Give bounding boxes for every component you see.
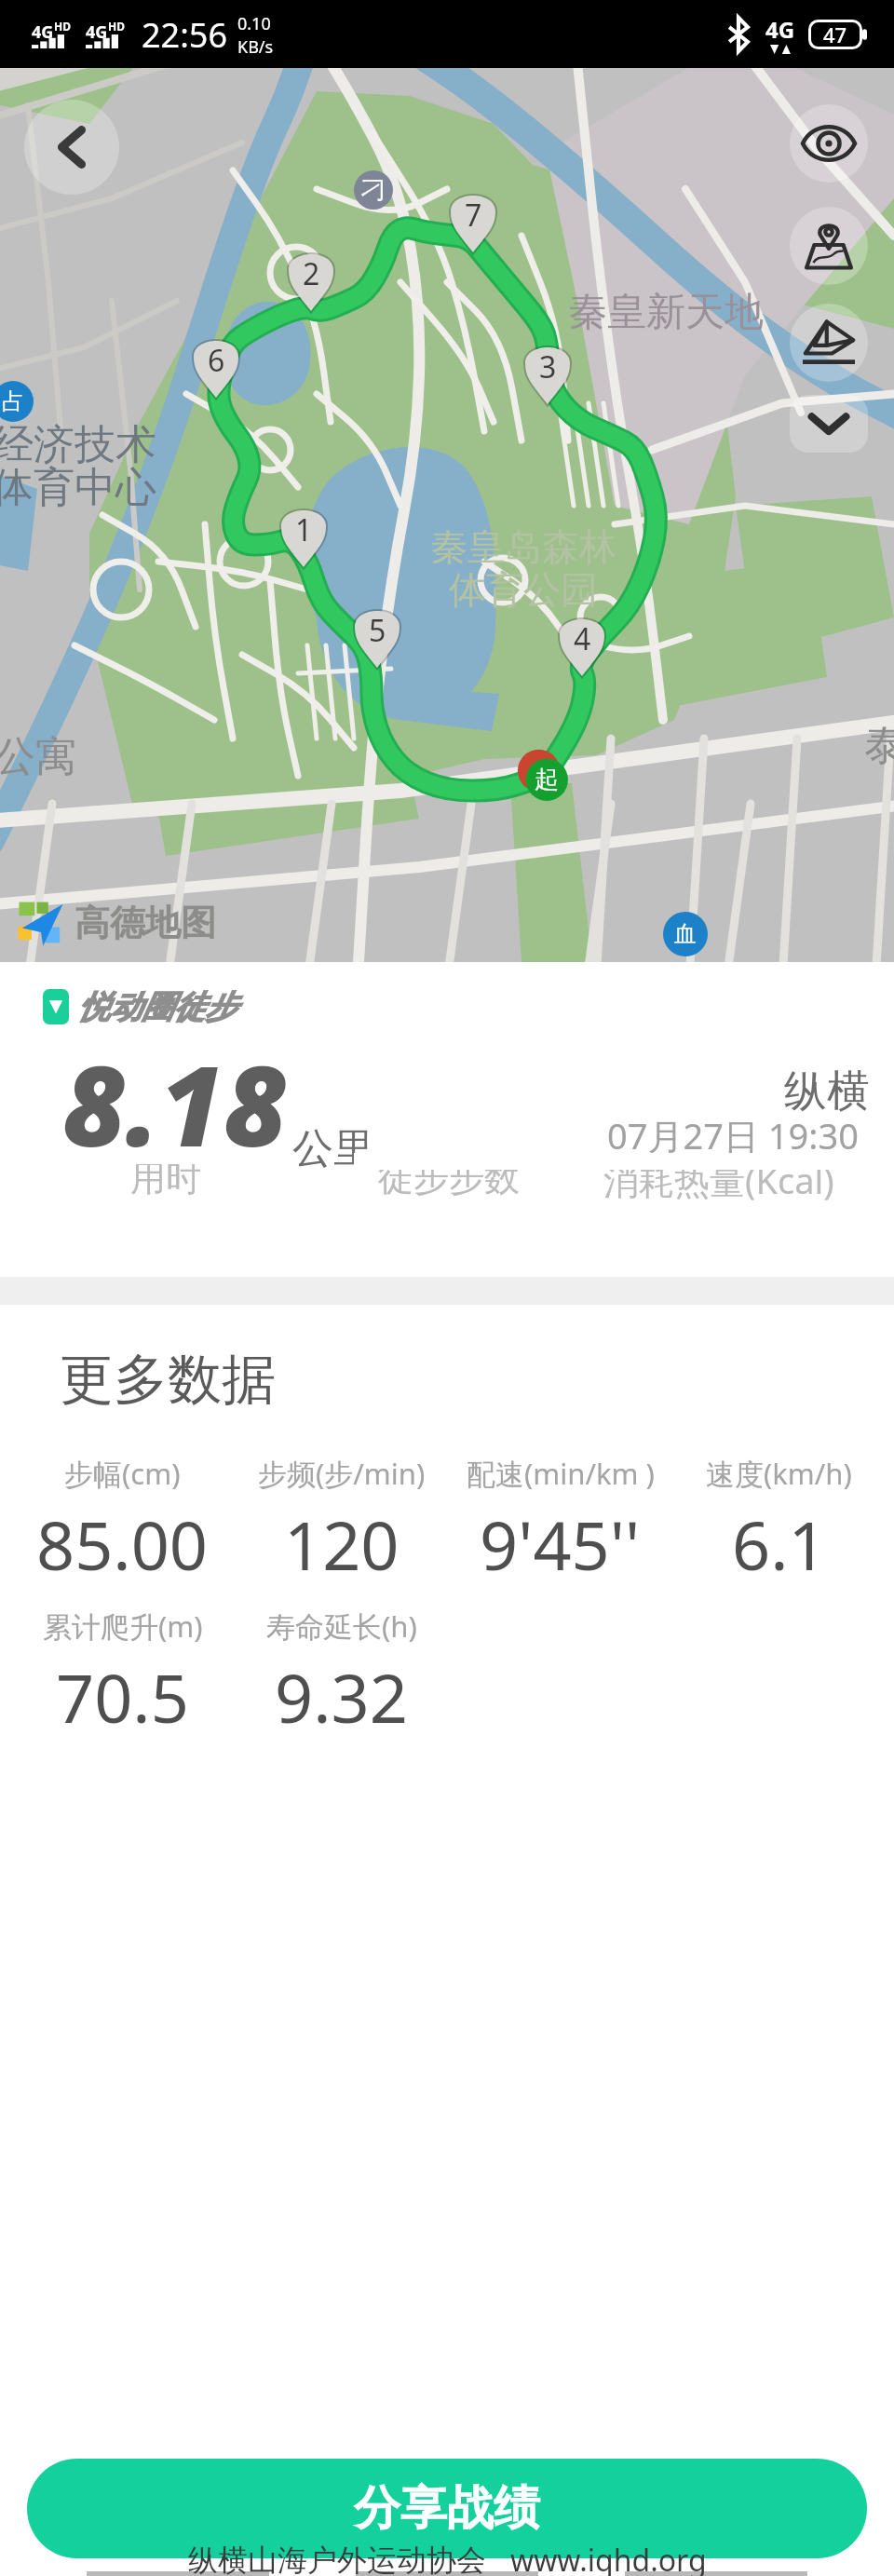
staticText: 4G [765,14,795,45]
staticText: 秦皇岛森林 [430,523,616,570]
staticText: 22:56 [142,12,228,58]
button[interactable]: Map markers [790,207,868,285]
staticText: 4 [574,618,591,659]
staticText: 血 [674,920,697,948]
staticText: 速度(km/h) [706,1454,852,1493]
staticText: 配速(min/km ) [467,1454,655,1493]
staticText: HD [108,19,125,34]
staticText: 纵横山海户外运动协会 [188,2542,486,2576]
staticText: 120 [284,1498,400,1590]
staticText: 0.10 [237,12,271,35]
staticText: 6.1 [732,1498,827,1590]
staticText: 分享战绩 [354,2479,540,2538]
button[interactable]: Map layers [790,304,868,382]
staticText: 占 [2,387,24,415]
staticText: 更多数据 [60,1346,276,1414]
staticText: 1 [295,509,313,550]
staticText: 07月27日 19:30 [607,1111,859,1159]
staticText: 高德地图 [74,901,216,945]
staticText: KB/s [237,35,274,59]
staticText: 消耗热量(Kcal) [603,1156,834,1204]
staticText: 用时 [130,1156,201,1200]
button[interactable]: 分享战绩 [27,2459,867,2558]
staticText: 步幅(cm) [64,1454,181,1493]
staticText: 徒步步数 [378,1156,520,1200]
staticText: 47 [823,20,847,48]
staticText: 秦皇新天地 [568,288,764,337]
staticText: 4G [32,20,54,44]
staticText: 体育中心 [0,462,156,513]
staticText: 纵横 [784,1064,870,1119]
staticText: HD [54,19,71,34]
staticText: 累计爬升(m) [43,1607,203,1646]
staticText: 3 [539,346,557,387]
staticText: 8.18 [62,1029,288,1179]
staticText: 经济技术 [0,419,156,470]
staticText: 70.5 [56,1651,189,1742]
staticText: 公寓 [0,731,76,782]
staticText: 步频(步/min) [258,1454,426,1493]
staticText: 公里 [292,1123,374,1174]
staticText: 7 [465,195,482,236]
staticText: 体育公园 [449,566,598,613]
staticText: www.iqhd.org [510,2540,707,2576]
staticText: 2 [303,253,320,294]
staticText: 寿命延长(h) [266,1607,417,1646]
staticText: 泰 [864,720,894,771]
button[interactable]: Show route overview [790,104,868,183]
staticText: 9.32 [275,1651,408,1742]
staticText: 悦动圈徒步 [78,987,237,1027]
button[interactable]: Back [24,100,119,195]
staticText: 4G [86,20,108,44]
staticText: 刁 [361,175,386,206]
staticText: 起 [535,765,559,795]
staticText: 5 [369,610,386,651]
staticText: 9'45'' [480,1498,641,1590]
staticText: 6 [208,340,225,381]
staticText: 85.00 [36,1498,209,1590]
button[interactable]: Collapse map [790,395,868,453]
